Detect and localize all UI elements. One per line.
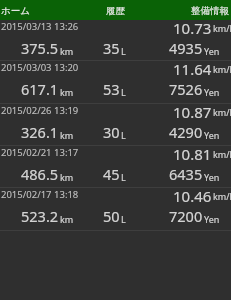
staticText: L — [121, 129, 126, 141]
staticText: 4935 — [169, 38, 203, 58]
button[interactable]: ホーム — [0, 0, 77, 20]
staticText: km — [60, 86, 74, 98]
staticText: 10.81 — [173, 144, 212, 162]
staticText: 2015/02/26 13:19 — [1, 104, 79, 117]
staticText: 326.1 — [21, 122, 59, 142]
staticText: km — [60, 45, 74, 57]
staticText: km/l — [213, 190, 231, 202]
staticText: 2015/03/03 13:20 — [1, 61, 79, 74]
staticText: 30 — [103, 122, 120, 142]
staticText: L — [121, 45, 126, 57]
staticText: km/l — [213, 148, 231, 160]
staticText: Yen — [204, 213, 220, 225]
staticText: km/l — [213, 22, 231, 34]
button[interactable]: 2015/03/03 13:20 — [0, 61, 231, 104]
staticText: Yen — [204, 86, 220, 98]
staticText: km — [60, 129, 74, 141]
staticText: 2015/02/17 13:18 — [1, 188, 79, 201]
staticText: 7526 — [169, 79, 203, 99]
staticText: L — [121, 171, 126, 183]
staticText: 375.5 — [21, 38, 59, 58]
staticText: ホーム — [1, 5, 30, 17]
staticText: 45 — [103, 164, 120, 184]
button[interactable]: 2015/02/17 13:18 — [0, 188, 231, 231]
staticText: 10.87 — [173, 102, 212, 120]
staticText: 6435 — [169, 164, 203, 184]
staticText: km — [60, 171, 74, 183]
staticText: 53 — [103, 79, 120, 99]
staticText: km/l — [213, 106, 231, 118]
staticText: 2015/03/13 13:26 — [1, 20, 79, 33]
button[interactable]: 履歴 — [77, 0, 154, 20]
staticText: 617.1 — [21, 79, 59, 99]
staticText: 50 — [103, 206, 120, 226]
staticText: 2015/02/21 13:17 — [1, 146, 79, 159]
staticText: 整備情報 — [191, 5, 229, 17]
staticText: km — [60, 213, 74, 225]
button[interactable]: 2015/02/26 13:19 — [0, 104, 231, 146]
staticText: L — [121, 86, 126, 98]
button[interactable]: 2015/02/21 13:17 — [0, 146, 231, 188]
staticText: 486.5 — [21, 164, 59, 184]
staticText: Yen — [204, 171, 220, 183]
staticText: 523.2 — [21, 206, 59, 226]
staticText: 10.46 — [173, 186, 212, 204]
staticText: L — [121, 213, 126, 225]
staticText: 11.64 — [173, 59, 212, 77]
staticText: 7200 — [169, 206, 203, 226]
staticText: 履歴 — [106, 5, 125, 17]
staticText: Yen — [204, 129, 220, 141]
staticText: Yen — [204, 45, 220, 57]
button[interactable]: 整備情報 — [154, 0, 231, 20]
staticText: 10.73 — [173, 18, 212, 36]
staticText: 4290 — [169, 122, 203, 142]
button[interactable]: 2015/03/13 13:26 — [0, 20, 231, 61]
staticText: 35 — [103, 38, 120, 58]
staticText: km/l — [213, 63, 231, 75]
